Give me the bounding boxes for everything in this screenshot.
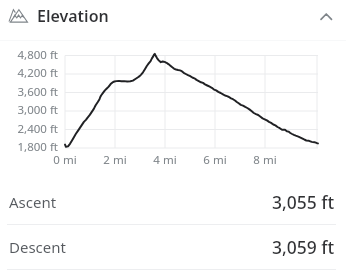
staticText: 6 mi xyxy=(198,152,232,168)
staticText: 2 mi xyxy=(98,152,132,168)
staticText: Ascent xyxy=(9,192,57,212)
staticText: 4 mi xyxy=(148,152,182,168)
staticText: 3,055 ft xyxy=(272,190,335,214)
button[interactable]: Ascent xyxy=(0,180,346,224)
staticText: Descent xyxy=(9,237,66,257)
other: Collapse xyxy=(306,0,346,32)
staticText: 1,800 ft xyxy=(0,139,58,155)
staticText: 4,800 ft xyxy=(0,47,58,63)
staticText: 3,059 ft xyxy=(272,235,335,259)
staticText: 3,000 ft xyxy=(0,102,58,118)
staticText: 4,200 ft xyxy=(0,65,58,81)
staticText: 0 mi xyxy=(48,152,82,168)
button[interactable]: Descent xyxy=(0,225,346,269)
staticText: 2,400 ft xyxy=(0,121,58,137)
staticText: 8 mi xyxy=(248,152,282,168)
staticText: 3,600 ft xyxy=(0,84,58,100)
staticText: Elevation xyxy=(37,5,109,27)
button[interactable]: Elevation xyxy=(0,0,346,32)
